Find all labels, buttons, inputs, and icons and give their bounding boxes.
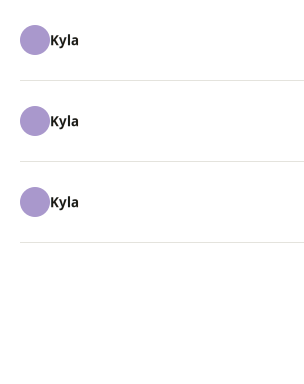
staticText: Kyla: [50, 31, 79, 49]
staticText: Kyla: [50, 112, 79, 130]
staticText: Kyla: [50, 193, 79, 211]
